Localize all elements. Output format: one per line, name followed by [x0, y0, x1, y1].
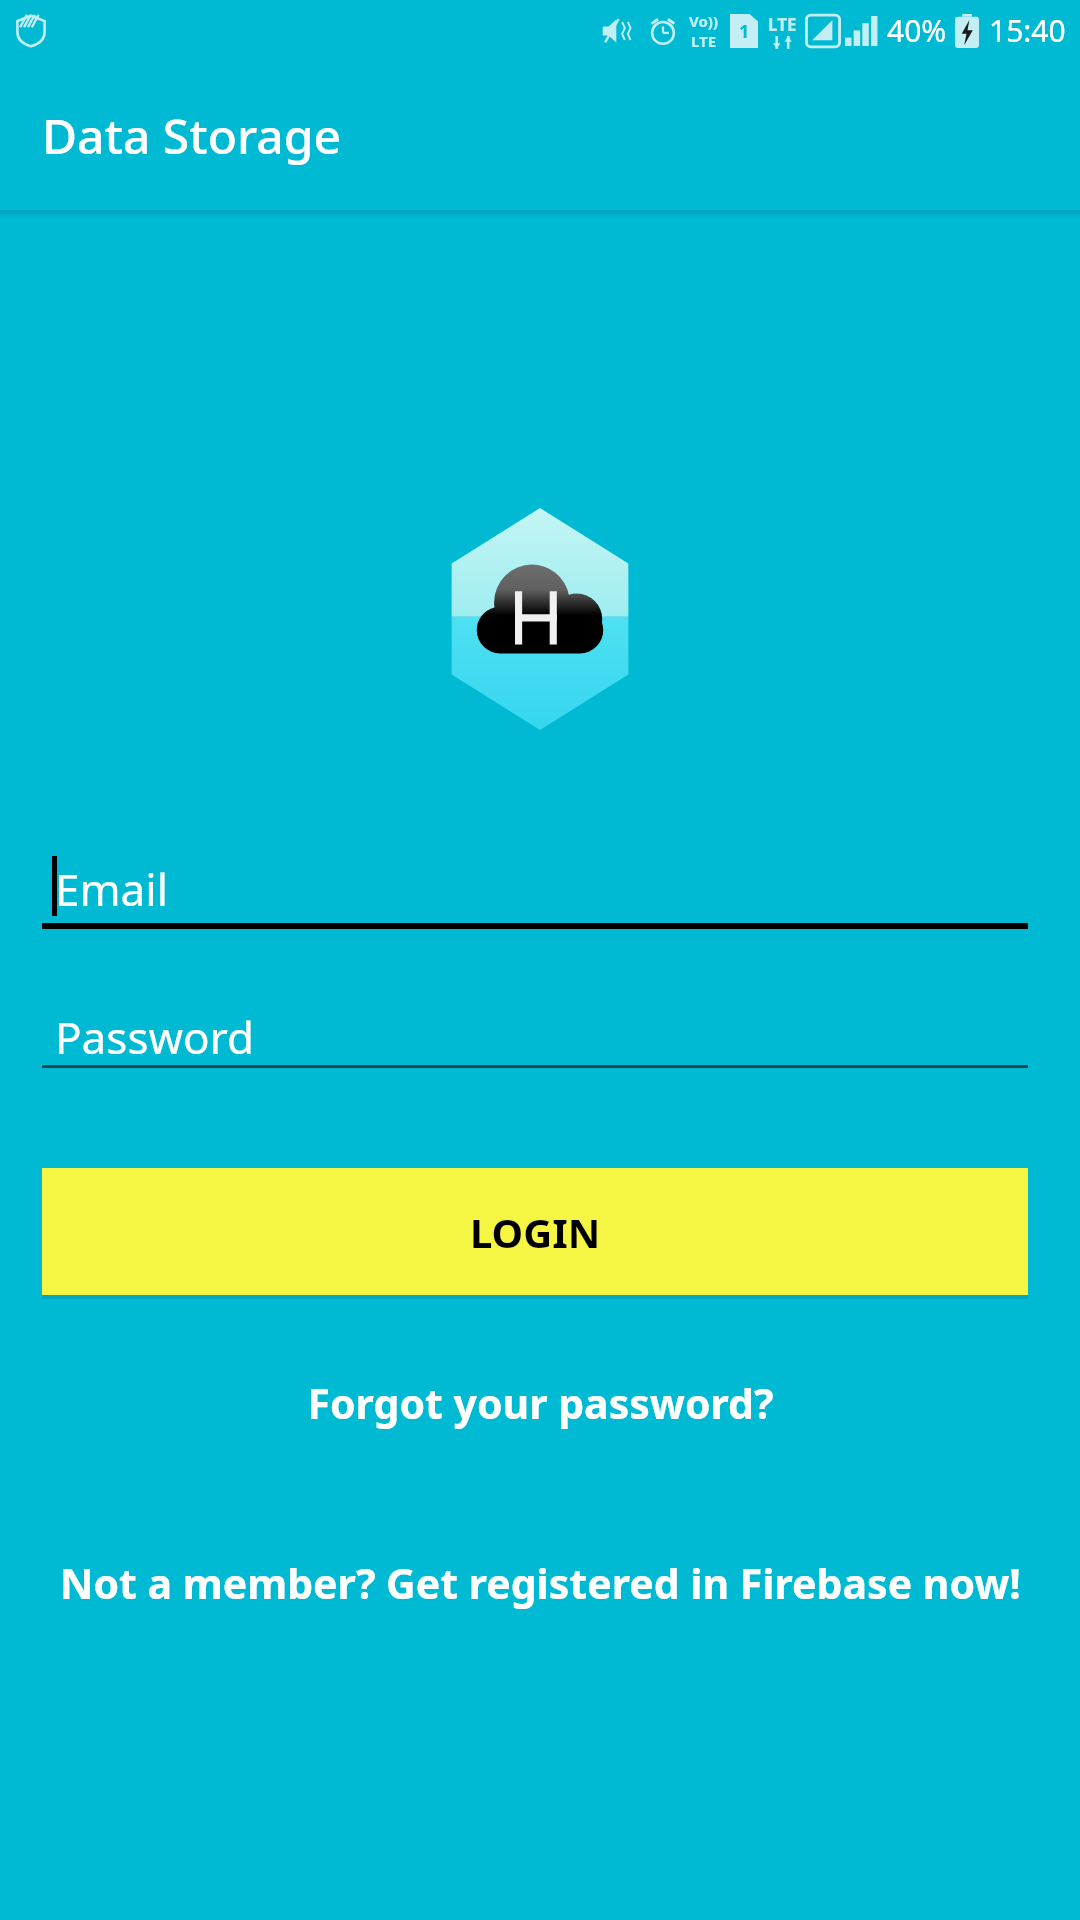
- staticText: Email: [55, 859, 168, 919]
- button[interactable]: Forgot your password?: [0, 1368, 1080, 1438]
- button[interactable]: Email: [42, 848, 1028, 920]
- staticText: 1: [739, 19, 750, 44]
- staticText: LTE: [768, 13, 797, 36]
- staticText: Data Storage: [42, 103, 342, 168]
- staticText: 40%: [887, 10, 947, 51]
- button[interactable]: Not a member? Get registered in Firebase…: [0, 1548, 1080, 1618]
- staticText: LTE: [691, 31, 717, 51]
- staticText: Vo)): [689, 11, 718, 31]
- staticText: Not a member? Get registered in Firebase…: [60, 1555, 1021, 1611]
- staticText: 15:40: [989, 10, 1066, 51]
- other: App logo: [438, 508, 642, 730]
- staticText: Forgot your password?: [307, 1375, 774, 1431]
- staticText: LOGIN: [470, 1205, 601, 1259]
- button[interactable]: Password: [42, 996, 1028, 1068]
- button[interactable]: LOGIN: [42, 1168, 1028, 1295]
- staticText: Password: [55, 1007, 255, 1067]
